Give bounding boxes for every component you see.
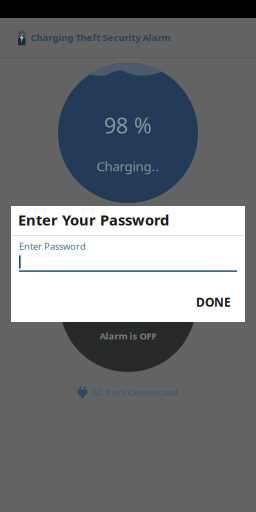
staticText: Enter Password bbox=[19, 240, 86, 252]
staticText: Enter Your Password bbox=[18, 210, 169, 229]
staticText: Charging.. bbox=[96, 157, 159, 175]
staticText: Alarm is OFF bbox=[99, 330, 156, 342]
staticText: 98 % bbox=[104, 111, 152, 139]
staticText: AC Port Connected bbox=[91, 386, 178, 398]
button[interactable]: DONE bbox=[188, 287, 239, 317]
staticText: Charging Theft Security Alarm bbox=[30, 31, 170, 44]
staticText: DONE bbox=[196, 294, 231, 310]
